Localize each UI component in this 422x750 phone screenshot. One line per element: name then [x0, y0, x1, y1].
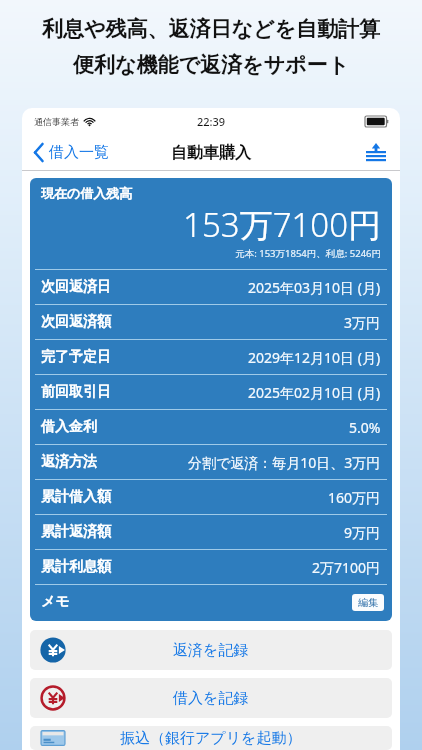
staticText: メモ	[41, 593, 70, 611]
button[interactable]: 編集	[352, 594, 384, 611]
staticText: 2025年03月10日 (月)	[248, 278, 381, 297]
staticText: 153万7100円	[41, 202, 381, 247]
staticText: 利息や残高、返済日などを自動計算	[42, 16, 380, 42]
button[interactable]: 累計返済額	[30, 515, 392, 549]
staticText: 返済方法	[41, 453, 97, 471]
staticText: 次回返済額	[41, 313, 111, 331]
button[interactable]: Export	[362, 139, 390, 167]
button[interactable]: 返済方法	[30, 445, 392, 479]
button[interactable]: 次回返済日	[30, 270, 392, 304]
button[interactable]: 振込（銀行アプリを起動）	[30, 726, 392, 750]
staticText: 前回取引日	[41, 383, 111, 401]
button[interactable]: 累計利息額	[30, 550, 392, 584]
staticText: 2029年12月10日 (月)	[248, 348, 381, 367]
staticText: 現在の借入残高	[41, 185, 133, 201]
button[interactable]: 借入一覧	[30, 139, 113, 166]
button[interactable]: 次回返済額	[30, 305, 392, 339]
staticText: 3万円	[344, 313, 381, 332]
staticText: 借入金利	[41, 418, 97, 436]
staticText: 次回返済日	[41, 278, 111, 296]
staticText: 9万円	[344, 523, 381, 542]
staticText: 累計返済額	[41, 523, 111, 541]
staticText: 22:39	[197, 114, 226, 129]
staticText: 編集	[358, 596, 378, 609]
staticText: 完了予定日	[41, 348, 111, 366]
button[interactable]: 前回取引日	[30, 375, 392, 409]
staticText: 分割で返済：毎月10日、3万円	[188, 453, 381, 472]
staticText: 通信事業者	[34, 116, 79, 127]
staticText: 便利な機能で返済をサポート	[73, 52, 349, 78]
staticText: 累計利息額	[41, 558, 111, 576]
button[interactable]: 累計借入額	[30, 480, 392, 514]
staticText: 5.0%	[349, 418, 381, 437]
staticText: 借入一覧	[49, 143, 109, 162]
staticText: 2万7100円	[312, 558, 381, 577]
staticText: 借入を記録	[173, 689, 249, 708]
button[interactable]: メモ	[30, 585, 392, 619]
button[interactable]: 借入を記録	[30, 678, 392, 718]
staticText: 返済を記録	[173, 641, 249, 660]
staticText: 自動車購入	[171, 143, 251, 163]
staticText: 累計借入額	[41, 488, 111, 506]
staticText: 160万円	[328, 488, 381, 507]
button[interactable]: 完了予定日	[30, 340, 392, 374]
button[interactable]: 借入金利	[30, 410, 392, 444]
staticText: 元本: 153万1854円、利息: 5246円	[41, 247, 381, 260]
button[interactable]: 返済を記録	[30, 630, 392, 670]
staticText: 2025年02月10日 (月)	[248, 383, 381, 402]
staticText: 振込（銀行アプリを起動）	[120, 729, 302, 748]
